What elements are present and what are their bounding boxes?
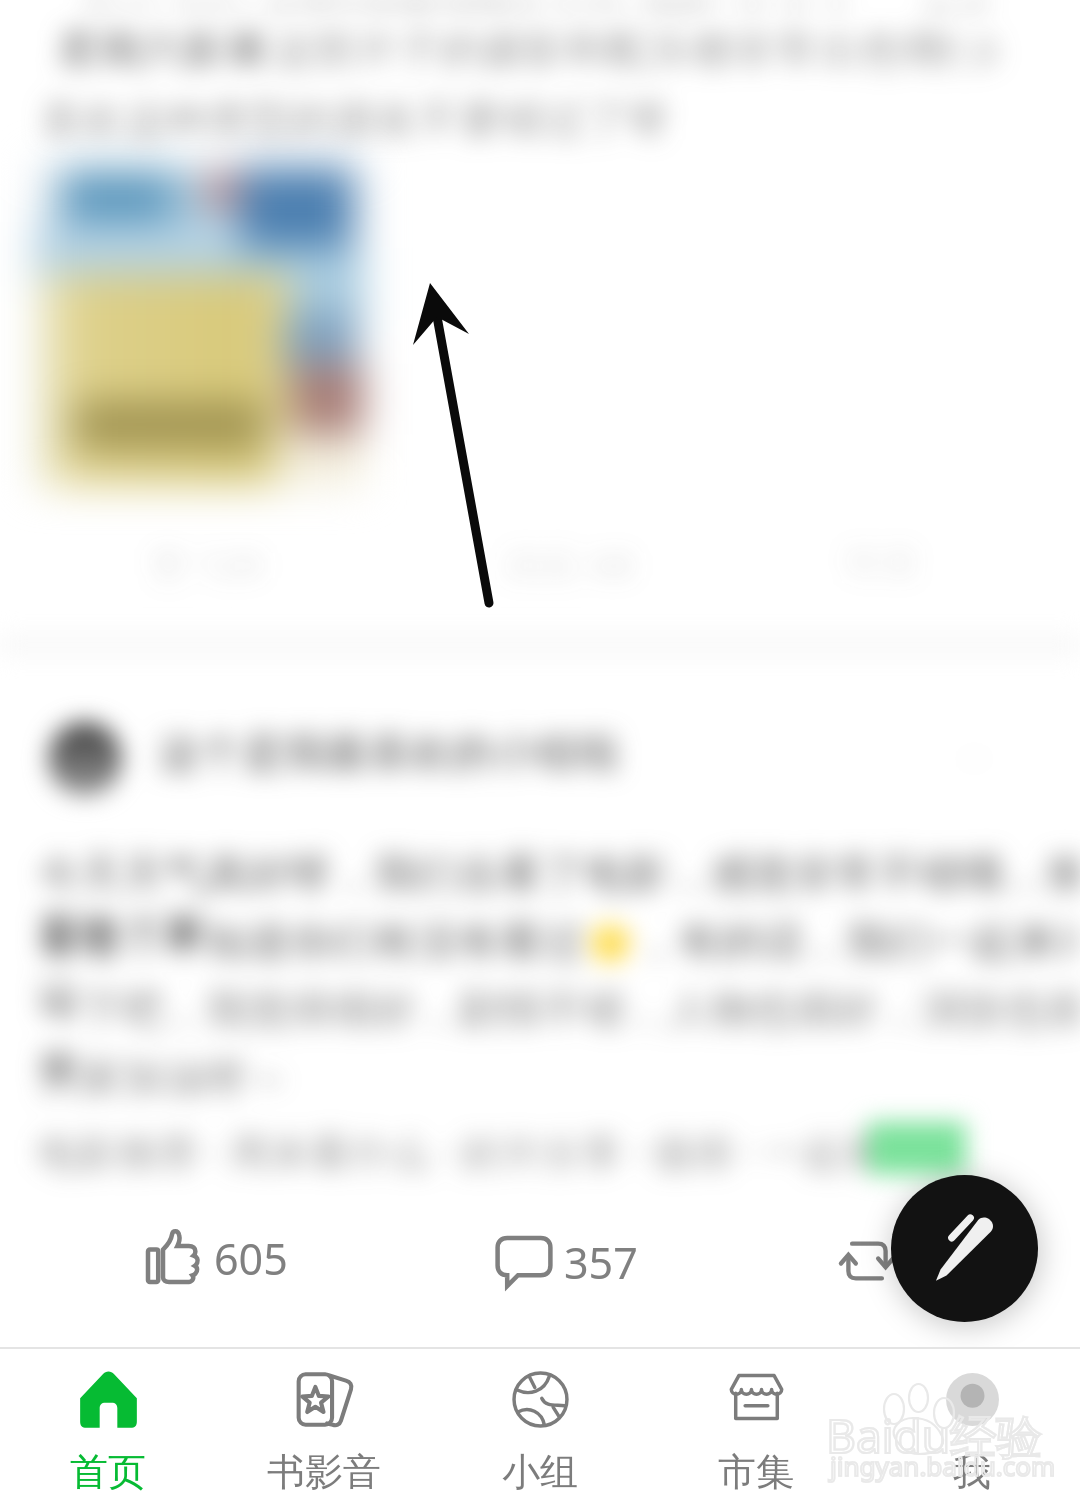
button[interactable]: 首页: [0, 1349, 216, 1500]
staticText: 这部片子的摄影和配乐都非常出色呀: [272, 24, 944, 77]
staticText: 五星推荐给大家一起来看看呀: [310, 0, 856, 15]
staticText: 一下吧，我觉得很好，剧情不错，人物也很好，演技也很棒: [38, 984, 1080, 1094]
staticText: 605: [214, 1229, 288, 1288]
staticText: 大家加油呀～: [38, 1052, 290, 1105]
button[interactable]: 书影音: [216, 1349, 432, 1500]
staticText: 357: [564, 1233, 638, 1292]
staticText: 这个是我最喜欢的小组啦: [158, 727, 620, 780]
staticText: jingyan.baidu.com: [830, 1448, 1056, 1483]
staticText: 今天天气真好呀，我们去看了电影，感觉非常不错哦，推荐给大家: [38, 848, 1080, 958]
staticText: 首页: [70, 1448, 146, 1496]
staticText: 喜欢这种类型的朋友不要错过了呀: [40, 94, 670, 147]
staticText: 电影推荐 · 周末看什么 · 好片分享 · 值得 · 一起看电影: [38, 1124, 965, 1179]
staticText: 一部好看的电影，真的值得一看再看: [40, 0, 712, 15]
staticText: 星期六影展: [58, 24, 268, 77]
staticText: 书影音: [267, 1448, 381, 1496]
button[interactable]: Compose new post: [891, 1175, 1038, 1322]
staticText: Baidu经验: [826, 1404, 1043, 1467]
button[interactable]: Repost: [836, 1230, 898, 1292]
button[interactable]: 小组: [432, 1349, 648, 1500]
button[interactable]: 605: [145, 1228, 288, 1288]
staticText: 看看，不知道你们有没有看过🌟，有的话，我们一起来讨论: [38, 916, 1080, 1026]
staticText: 我: [953, 1448, 991, 1496]
button[interactable]: 市集: [648, 1349, 864, 1500]
staticText: 市集: [718, 1448, 794, 1496]
staticText: 小组: [502, 1448, 578, 1496]
staticText: 更多: [930, 28, 1006, 76]
button[interactable]: 357: [494, 1232, 638, 1292]
button[interactable]: 我: [864, 1349, 1080, 1500]
